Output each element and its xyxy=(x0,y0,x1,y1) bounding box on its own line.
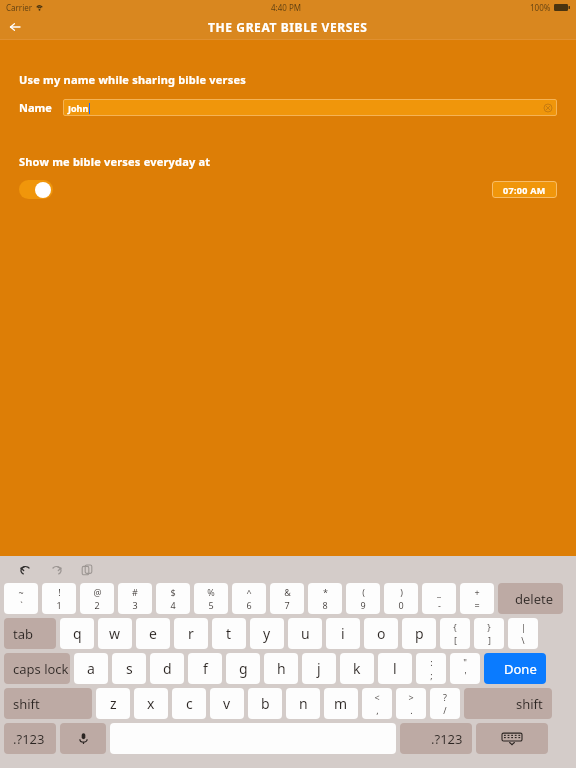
button[interactable]: + xyxy=(460,583,494,614)
button[interactable]: k xyxy=(340,653,374,684)
button[interactable]: Paste xyxy=(76,559,98,581)
staticText: * xyxy=(323,586,328,598)
button[interactable]: o xyxy=(364,618,398,649)
staticText: y xyxy=(263,624,271,643)
staticText: shift xyxy=(516,695,543,713)
staticText: > xyxy=(408,691,414,703)
button[interactable]: u xyxy=(288,618,322,649)
staticText: 7 xyxy=(284,599,290,611)
button[interactable]: .?123 xyxy=(400,723,472,754)
button[interactable]: shift xyxy=(4,688,92,719)
button[interactable]: * xyxy=(308,583,342,614)
button[interactable]: ? xyxy=(430,688,460,719)
button[interactable]: tab xyxy=(4,618,56,649)
button[interactable]: Done xyxy=(484,653,546,684)
button[interactable]: ) xyxy=(384,583,418,614)
button[interactable]: y xyxy=(250,618,284,649)
button[interactable]: < xyxy=(362,688,392,719)
staticText: / xyxy=(443,704,447,716)
button[interactable]: caps lock xyxy=(4,653,70,684)
staticText: 5 xyxy=(208,599,214,611)
staticText: ~ xyxy=(18,586,24,598)
staticText: l xyxy=(393,659,397,678)
button[interactable]: s xyxy=(112,653,146,684)
staticText: w xyxy=(109,624,121,643)
button[interactable]: d xyxy=(150,653,184,684)
staticText: } xyxy=(487,621,491,633)
button[interactable]: { xyxy=(440,618,470,649)
button[interactable]: _ xyxy=(422,583,456,614)
staticText: s xyxy=(126,659,133,678)
staticText: 8 xyxy=(322,599,328,611)
button[interactable]: shift xyxy=(464,688,552,719)
staticText: f xyxy=(203,659,208,678)
staticText: k xyxy=(353,659,361,678)
button[interactable]: : xyxy=(416,653,446,684)
button[interactable]: # xyxy=(118,583,152,614)
button[interactable]: Back xyxy=(0,14,30,39)
staticText: & xyxy=(284,586,291,598)
staticText: n xyxy=(299,694,308,713)
button[interactable]: r xyxy=(174,618,208,649)
button[interactable]: q xyxy=(60,618,94,649)
button[interactable]: g xyxy=(226,653,260,684)
button[interactable]: .?123 xyxy=(4,723,56,754)
button[interactable]: & xyxy=(270,583,304,614)
button[interactable]: n xyxy=(286,688,320,719)
button[interactable]: $ xyxy=(156,583,190,614)
staticText: j xyxy=(317,659,321,678)
staticText: \ xyxy=(521,634,525,646)
button[interactable]: Dictation xyxy=(60,723,106,754)
button[interactable]: % xyxy=(194,583,228,614)
button[interactable]: John xyxy=(63,99,557,116)
button[interactable]: ^ xyxy=(232,583,266,614)
button[interactable]: b xyxy=(248,688,282,719)
staticText: + xyxy=(474,586,480,598)
button[interactable]: h xyxy=(264,653,298,684)
button[interactable]: Undo xyxy=(14,559,36,581)
staticText: Use my name while sharing bible verses xyxy=(19,72,246,87)
button[interactable]: @ xyxy=(80,583,114,614)
staticText: h xyxy=(277,659,286,678)
button[interactable]: w xyxy=(98,618,132,649)
button[interactable]: " xyxy=(450,653,480,684)
staticText: 2 xyxy=(94,599,100,611)
button[interactable]: ~ xyxy=(4,583,38,614)
button[interactable]: Redo xyxy=(45,559,67,581)
button[interactable]: a xyxy=(74,653,108,684)
button[interactable]: | xyxy=(508,618,538,649)
button[interactable]: p xyxy=(402,618,436,649)
button[interactable]: 07:00 AM xyxy=(492,181,557,198)
button[interactable]: t xyxy=(212,618,246,649)
staticText: v xyxy=(223,694,231,713)
button[interactable]: e xyxy=(136,618,170,649)
staticText: | xyxy=(521,621,526,633)
button[interactable]: Daily reminder toggle xyxy=(19,180,53,199)
staticText: ; xyxy=(430,669,433,681)
button[interactable]: } xyxy=(474,618,504,649)
staticText: ) xyxy=(400,586,403,598)
button[interactable]: f xyxy=(188,653,222,684)
staticText: ` xyxy=(20,599,23,611)
button[interactable]: l xyxy=(378,653,412,684)
button[interactable]: j xyxy=(302,653,336,684)
button[interactable]: z xyxy=(96,688,130,719)
staticText: " xyxy=(463,656,467,668)
staticText: delete xyxy=(515,590,554,608)
button[interactable]: m xyxy=(324,688,358,719)
button[interactable]: c xyxy=(172,688,206,719)
staticText: 4:40 PM xyxy=(271,2,302,13)
staticText: x xyxy=(147,694,155,713)
button[interactable]: ! xyxy=(42,583,76,614)
staticText: 0 xyxy=(398,599,404,611)
button[interactable]: i xyxy=(326,618,360,649)
staticText: b xyxy=(261,694,270,713)
button[interactable]: > xyxy=(396,688,426,719)
button[interactable]: v xyxy=(210,688,244,719)
button[interactable]: ( xyxy=(346,583,380,614)
button[interactable]: delete xyxy=(498,583,563,614)
button[interactable]: x xyxy=(134,688,168,719)
button[interactable]: Hide keyboard xyxy=(476,723,548,754)
staticText: p xyxy=(415,624,424,643)
